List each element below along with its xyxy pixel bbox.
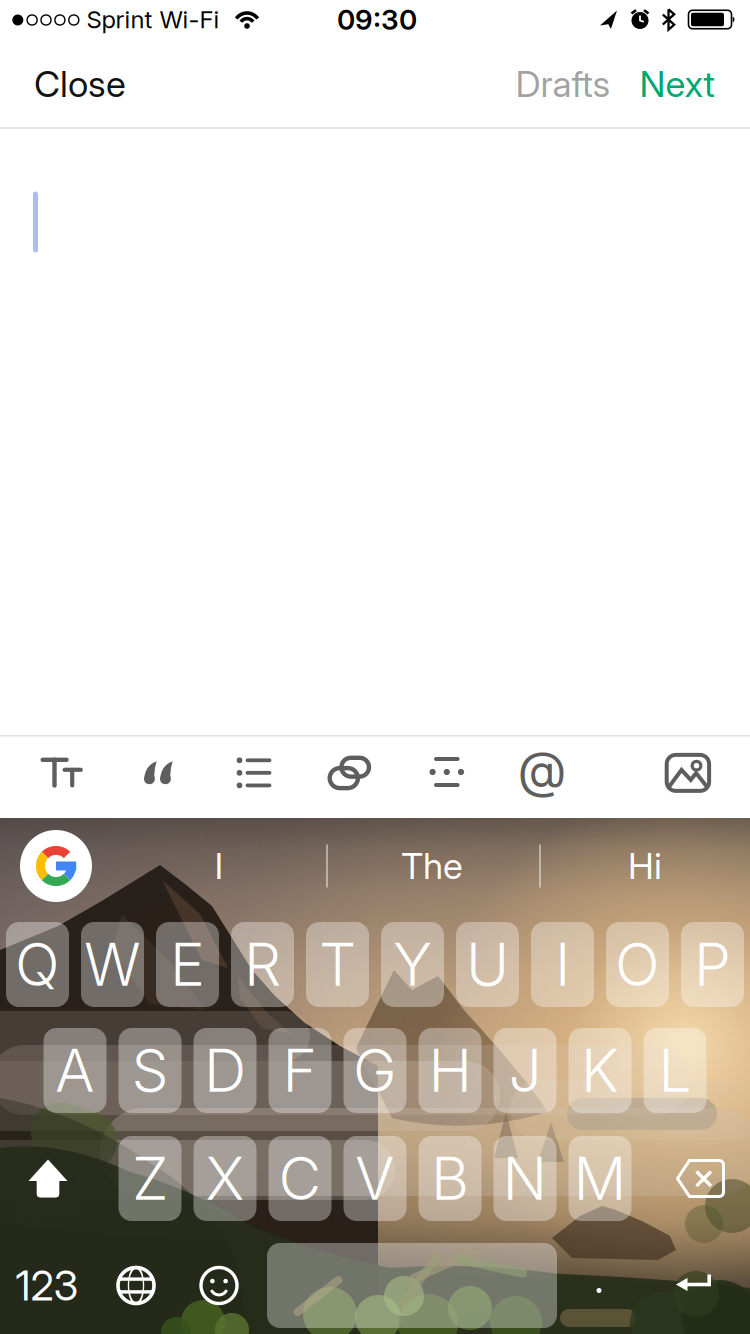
staticText: C [278,1144,321,1213]
staticText: 09:30 [337,3,417,36]
staticText: E [170,930,205,999]
button[interactable]: Numbers [7,1243,87,1328]
button[interactable]: Return [676,1274,712,1296]
staticText: D [204,1036,246,1105]
staticText: Y [393,930,432,999]
button[interactable]: Emoji [199,1265,239,1305]
staticText: K [581,1036,619,1105]
button[interactable]: U [456,922,519,1007]
button[interactable]: S [118,1028,181,1113]
button[interactable]: Hi [555,831,735,901]
staticText: Q [15,930,60,999]
staticText: V [355,1144,395,1213]
staticText: U [466,930,509,999]
staticText: X [205,1144,244,1213]
button[interactable]: Next [639,63,714,105]
staticText: The [401,845,463,887]
button[interactable]: Text size [40,743,84,795]
button[interactable]: Mention [517,740,566,799]
button[interactable]: Period [581,1260,617,1320]
staticText: G [353,1036,397,1105]
staticText: 123 [15,1261,78,1310]
staticText: P [694,930,731,999]
button[interactable]: Insert image [667,755,709,791]
button[interactable]: List [236,757,271,788]
button[interactable]: W [81,922,144,1007]
button[interactable]: Drafts [515,63,610,105]
button[interactable]: E [156,922,219,1007]
button[interactable]: C [268,1136,331,1221]
button[interactable]: Google search [20,830,92,902]
button[interactable]: K [568,1028,631,1113]
button[interactable]: D [193,1028,256,1113]
button[interactable]: The [342,831,522,901]
staticText: O [615,930,660,999]
button[interactable]: X [193,1136,256,1221]
button[interactable]: Switch keyboard [116,1265,156,1305]
button[interactable]: Shift [28,1159,67,1197]
button[interactable]: Space [267,1243,557,1328]
button[interactable]: I [129,831,309,901]
staticText: F [282,1036,317,1105]
staticText: I [214,845,223,887]
staticText: I [555,930,570,999]
button[interactable]: Q [6,922,69,1007]
staticText: Hi [628,845,662,887]
staticText: @ [517,740,566,799]
staticText: S [131,1036,168,1105]
button[interactable]: H [418,1028,481,1113]
button[interactable]: L [643,1028,706,1113]
button[interactable]: Delete [676,1159,725,1198]
button[interactable]: G [343,1028,406,1113]
staticText: N [502,1144,547,1213]
staticText: M [573,1144,626,1213]
staticText: Next [639,63,714,105]
staticText: H [428,1036,471,1105]
button[interactable]: Y [381,922,444,1007]
button[interactable]: F [268,1028,331,1113]
button[interactable]: A [43,1028,106,1113]
button[interactable]: V [343,1136,406,1221]
button[interactable]: O [606,922,669,1007]
staticText: Z [132,1144,168,1213]
button[interactable]: Link [329,757,369,789]
button[interactable]: Quote [144,761,173,784]
button[interactable]: N [493,1136,556,1221]
button[interactable]: Close [34,63,126,105]
button[interactable]: J [493,1028,556,1113]
staticText: Drafts [515,63,610,105]
button[interactable]: R [231,922,294,1007]
staticText: A [55,1036,95,1105]
button[interactable]: M [568,1136,631,1221]
button[interactable]: B [418,1136,481,1221]
button[interactable]: P [681,922,744,1007]
staticText: W [84,930,141,999]
staticText: J [508,1036,541,1105]
staticText: L [658,1036,691,1105]
staticText: B [431,1144,469,1213]
staticText: Sprint Wi-Fi [86,5,219,34]
button[interactable]: T [306,922,369,1007]
button[interactable]: Z [118,1136,181,1221]
staticText: Close [34,63,126,105]
button[interactable]: Section divider [430,757,464,787]
staticText: T [319,930,356,999]
button[interactable]: I [531,922,594,1007]
staticText: R [244,930,281,999]
